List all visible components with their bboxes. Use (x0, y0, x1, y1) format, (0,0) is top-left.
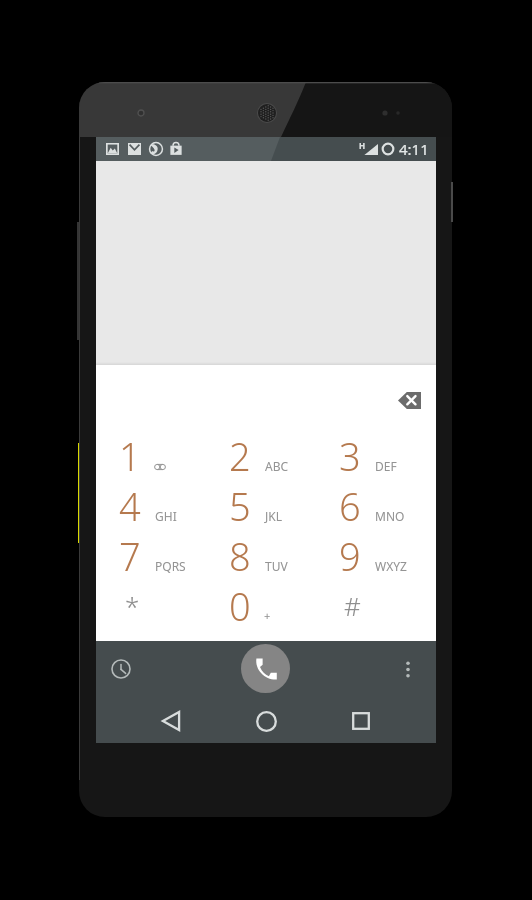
staticText: DEF (375, 458, 397, 474)
button[interactable] (99, 578, 205, 628)
button[interactable] (209, 478, 315, 528)
staticText: 7 (119, 530, 141, 582)
staticText: 4:11 (399, 139, 429, 159)
button[interactable] (99, 528, 205, 578)
button[interactable] (209, 578, 315, 628)
staticText: + (264, 608, 271, 623)
staticText: 2 (229, 430, 251, 482)
staticText: H (359, 140, 366, 151)
staticText: # (344, 588, 361, 623)
staticText: ABC (265, 458, 289, 474)
button[interactable]: Recents (341, 701, 381, 741)
button[interactable] (99, 428, 205, 478)
staticText: WXYZ (375, 558, 407, 574)
staticText: MNO (375, 508, 405, 524)
staticText: 6 (339, 480, 361, 532)
staticText: 1 (119, 430, 141, 482)
button[interactable] (319, 428, 425, 478)
button[interactable]: Back (151, 701, 191, 741)
button[interactable] (209, 428, 315, 478)
staticText: 3 (339, 430, 361, 482)
staticText: JKL (265, 508, 282, 524)
staticText: TUV (265, 558, 288, 574)
staticText: 5 (229, 480, 251, 532)
staticText: PQRS (155, 558, 186, 574)
button[interactable]: Backspace (398, 392, 421, 409)
staticText: GHI (155, 508, 177, 524)
staticText: * (125, 588, 140, 623)
button[interactable] (319, 578, 425, 628)
button[interactable]: Call (241, 644, 290, 693)
button[interactable] (319, 478, 425, 528)
button[interactable] (209, 528, 315, 578)
button[interactable] (319, 528, 425, 578)
button[interactable]: Home (246, 701, 286, 741)
button[interactable] (99, 478, 205, 528)
staticText: 8 (229, 530, 251, 582)
staticText: 9 (339, 530, 361, 582)
staticText: 4 (119, 480, 141, 532)
button[interactable]: Call history (107, 655, 135, 683)
staticText: 0 (229, 580, 251, 632)
button[interactable]: More options (394, 655, 422, 683)
